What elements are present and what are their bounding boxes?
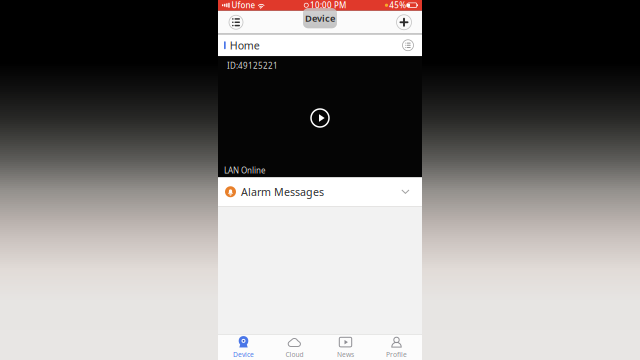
button[interactable]: News	[320, 334, 371, 360]
staticText: Device	[233, 350, 254, 359]
staticText: Device	[305, 12, 335, 24]
button[interactable]: Device	[303, 8, 337, 28]
staticText: Home	[230, 38, 260, 52]
staticText: News	[337, 350, 354, 359]
button[interactable]: Switch view	[399, 35, 417, 55]
staticText: Ufone	[232, 0, 256, 10]
staticText: Cloud	[285, 350, 303, 359]
staticText: 10:00 PM	[310, 0, 346, 10]
button[interactable]: Add	[390, 11, 418, 34]
button[interactable]: Device	[218, 334, 269, 360]
staticText: Alarm Messages	[241, 185, 324, 199]
staticText: Profile	[386, 350, 407, 359]
button[interactable]: Play live video	[311, 109, 329, 127]
staticText: 45%	[389, 0, 406, 10]
button[interactable]: Profile	[371, 334, 422, 360]
staticText: ID:49125221	[227, 60, 278, 71]
button[interactable]: Menu	[222, 11, 250, 34]
staticText: LAN Online	[224, 165, 266, 176]
button[interactable]: Cloud	[269, 334, 320, 360]
button[interactable]: Alarm Messages	[218, 177, 422, 206]
